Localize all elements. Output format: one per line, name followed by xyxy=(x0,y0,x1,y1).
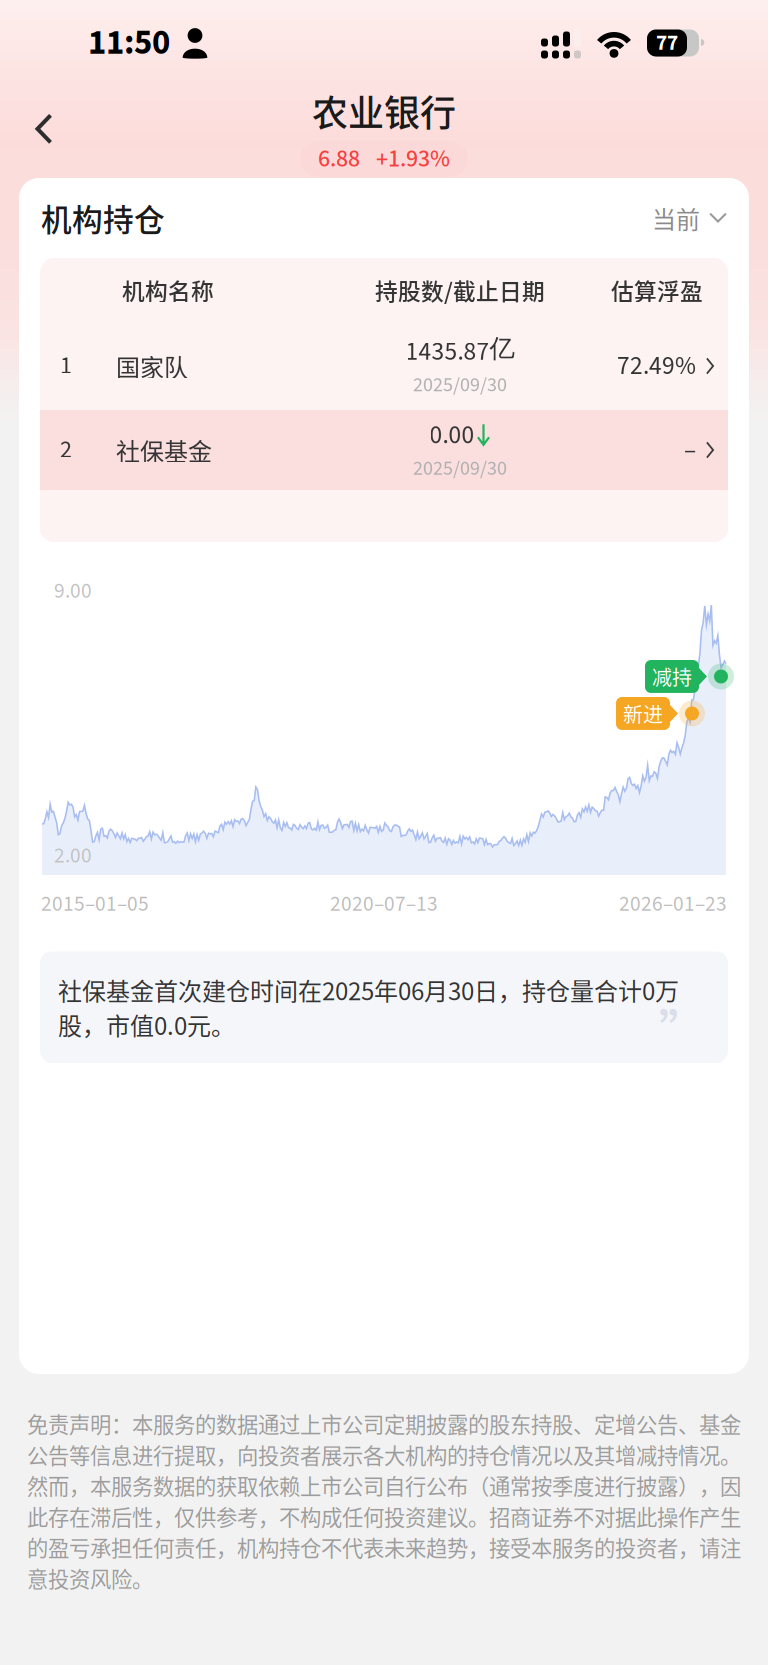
staticText: – xyxy=(684,432,696,468)
staticText: 0.00 xyxy=(429,417,474,453)
staticText: 估算浮盈 xyxy=(611,274,703,306)
staticText: 国家队 xyxy=(116,349,188,383)
staticText: 2 xyxy=(60,433,72,467)
staticText: 2.00 xyxy=(54,841,92,871)
staticText: 2015–01–05 xyxy=(41,889,149,919)
staticText: 减持 xyxy=(652,662,692,691)
staticText: 持股数/截止日期 xyxy=(375,274,545,306)
staticText: 11:50 xyxy=(88,18,170,68)
staticText: 免责声明：本服务的数据通过上市公司定期披露的股东持股、定增公告、基金公告等信息进… xyxy=(27,1408,741,1593)
button[interactable]: 当前 xyxy=(652,201,727,235)
staticText: 机构持仓 xyxy=(41,196,165,240)
button[interactable]: Back xyxy=(12,97,76,161)
staticText: 机构名称 xyxy=(122,274,214,306)
staticText: 2026–01–23 xyxy=(619,889,727,919)
staticText: 9.00 xyxy=(54,576,92,606)
staticText: 6.88 xyxy=(318,142,360,176)
staticText: 72.49% xyxy=(617,348,696,384)
staticText: 社保基金 xyxy=(116,433,212,467)
staticText: 1435.87亿 xyxy=(405,333,514,370)
staticText: 1 xyxy=(60,349,72,383)
staticText: ” xyxy=(659,995,704,1061)
staticText: 社保基金首次建仓时间在2025年06月30日，持仓量合计0万股，市值0.0元。 xyxy=(58,972,679,1042)
staticText: 当前 xyxy=(652,201,700,235)
staticText: 2025/09/30 xyxy=(413,371,507,399)
staticText: 新进 xyxy=(623,699,663,728)
staticText: +1.93% xyxy=(376,142,450,176)
staticText: 2020–07–13 xyxy=(330,889,438,919)
staticText: 农业银行 xyxy=(312,85,456,137)
staticText: 2025/09/30 xyxy=(413,454,507,483)
staticText: 77 xyxy=(656,28,678,58)
button[interactable]: 2 xyxy=(40,410,728,490)
button[interactable]: 1 xyxy=(40,322,728,410)
